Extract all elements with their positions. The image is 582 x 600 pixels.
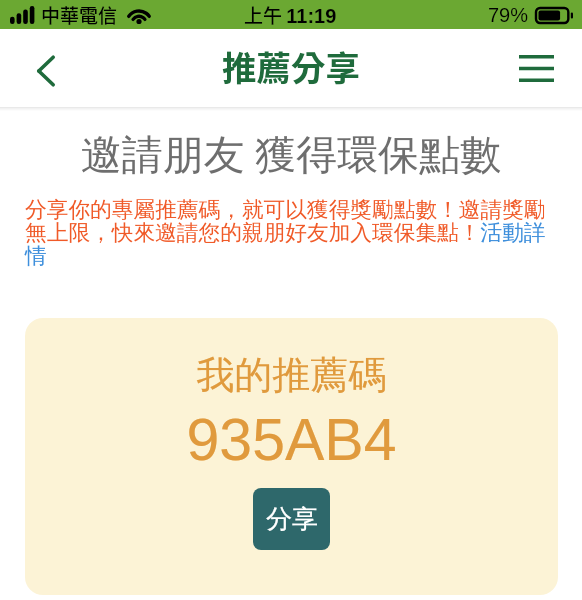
staticText: 935AB4 [25, 407, 558, 473]
button[interactable]: Menu [508, 40, 564, 96]
staticText: 我的推薦碼 [25, 351, 558, 399]
staticText: 分享 [266, 503, 318, 536]
staticText: 分享你的專屬推薦碼，就可以獲得獎勵點數！邀請獎勵無上限，快來邀請您的親朋好友加入… [25, 196, 557, 270]
staticText: 79% [488, 4, 529, 26]
staticText: 中華電信 [41, 1, 118, 29]
button[interactable]: 分享 [253, 488, 330, 550]
staticText: 上午 11:19 [244, 1, 337, 29]
staticText: 推薦分享 [222, 41, 360, 91]
button[interactable]: Back [18, 40, 74, 96]
staticText: 邀請朋友 獲得環保點數 [0, 125, 582, 181]
